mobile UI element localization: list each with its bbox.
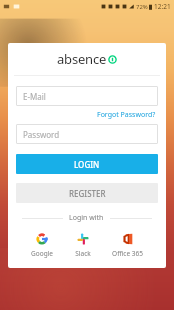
staticText: Office 365 [112,249,143,258]
button[interactable]: LOGIN [16,154,158,174]
staticText: E-Mail [23,91,46,102]
button[interactable]: E-Mail [16,86,158,106]
staticText: LOGIN [74,159,100,170]
staticText: Forgot Password? [97,110,156,120]
staticText: REGISTER [69,188,106,199]
button[interactable]: Login with Office 365 [108,231,147,259]
button[interactable]: REGISTER [16,183,158,203]
button[interactable]: Login with Google [27,231,57,259]
button[interactable]: Forgot Password? [97,110,156,120]
staticText: Login with [69,213,104,223]
button[interactable]: Login with Slack [71,231,95,259]
staticText: 12:21 [154,2,171,11]
staticText: 72% [136,3,148,11]
button[interactable]: Password [16,124,158,144]
staticText: Google [31,249,53,258]
staticText: absence [57,50,107,68]
staticText: Password [23,129,60,140]
staticText: Slack [75,249,91,258]
